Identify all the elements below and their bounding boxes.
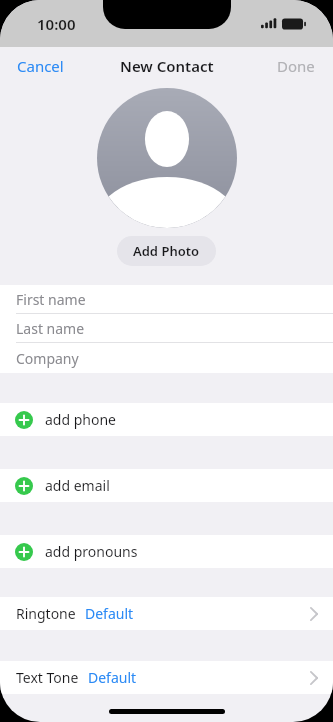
staticText: Cancel xyxy=(17,56,64,76)
button[interactable]: Last name xyxy=(0,314,333,343)
staticText: add pronouns xyxy=(45,542,138,561)
button[interactable]: add email xyxy=(0,469,333,502)
staticText: add email xyxy=(45,476,110,495)
staticText: 10:00 xyxy=(37,14,76,34)
button[interactable]: Company xyxy=(0,343,333,373)
staticText: Text Tone xyxy=(16,668,79,687)
staticText: Default xyxy=(85,604,134,623)
staticText: New Contact xyxy=(120,56,214,76)
button[interactable]: Add contact photo xyxy=(97,88,237,228)
button[interactable]: Ringtone xyxy=(0,597,333,630)
staticText: Company xyxy=(16,349,79,368)
staticText: Last name xyxy=(16,319,85,338)
button[interactable]: add phone xyxy=(0,403,333,436)
button[interactable]: Cancel xyxy=(0,48,76,84)
button[interactable]: Done xyxy=(265,48,333,84)
button[interactable]: Text Tone xyxy=(0,661,333,694)
button[interactable]: add pronouns xyxy=(0,535,333,568)
staticText: add phone xyxy=(45,410,116,429)
staticText: First name xyxy=(16,290,86,309)
staticText: Ringtone xyxy=(16,604,76,623)
staticText: Add Photo xyxy=(133,242,200,260)
staticText: Default xyxy=(88,668,137,687)
button[interactable]: First name xyxy=(0,285,333,314)
staticText: Done xyxy=(277,56,315,76)
button[interactable]: Add Photo xyxy=(117,236,216,266)
